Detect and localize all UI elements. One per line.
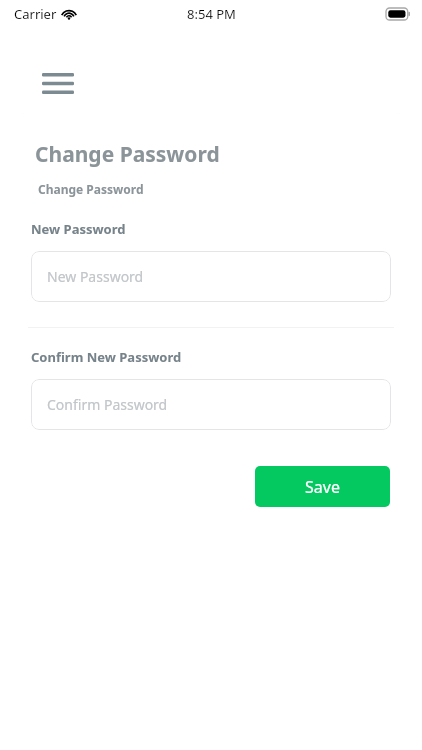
staticText: Save [305, 476, 340, 498]
staticText: Confirm Password [47, 395, 168, 414]
staticText: New Password [31, 220, 126, 238]
staticText: Change Password [35, 140, 220, 169]
staticText: 8:54 PM [187, 5, 236, 23]
staticText: Confirm New Password [31, 348, 182, 366]
button[interactable]: Save [255, 466, 390, 507]
staticText: Carrier [14, 5, 57, 23]
button[interactable]: New Password [31, 251, 391, 302]
button[interactable]: Confirm Password [31, 379, 391, 430]
staticText: New Password [47, 267, 144, 286]
staticText: Change Password [38, 181, 144, 197]
button[interactable]: Open navigation menu [36, 64, 80, 102]
